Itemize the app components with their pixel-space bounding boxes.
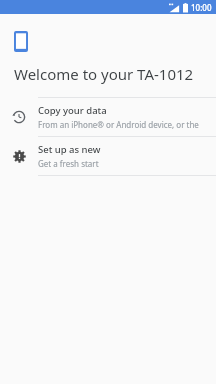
button[interactable]: Copy your data — [0, 98, 216, 136]
staticText: From an iPhone® or Android device, or th… — [38, 119, 210, 130]
button[interactable]: Set up as new — [0, 137, 216, 175]
staticText: Welcome to your TA-1012 — [14, 64, 194, 84]
staticText: Get a fresh start — [38, 158, 99, 169]
staticText: Set up as new — [38, 143, 101, 156]
staticText: Copy your data — [38, 104, 107, 117]
staticText: 10:00 — [191, 2, 212, 13]
